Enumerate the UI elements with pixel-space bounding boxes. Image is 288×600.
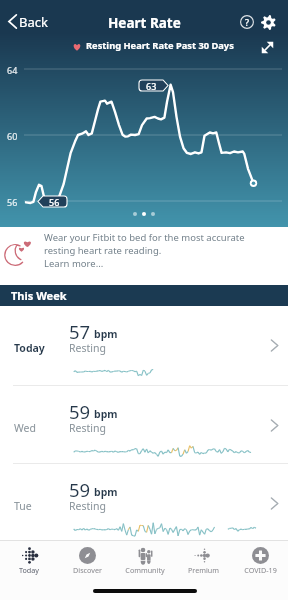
button[interactable]: Back bbox=[0, 8, 56, 35]
staticText: Wear your Fitbit to bed for the most acc… bbox=[44, 231, 245, 244]
staticText: 63 bbox=[146, 80, 157, 92]
staticText: 59 bbox=[69, 477, 91, 502]
staticText: Heart Rate bbox=[108, 14, 181, 32]
staticText: COVID-19 bbox=[244, 565, 277, 575]
staticText: resting heart rate reading. bbox=[44, 244, 162, 257]
button[interactable]: Settings bbox=[257, 11, 279, 33]
staticText: bpm bbox=[94, 327, 118, 341]
button[interactable]: Today bbox=[0, 541, 58, 579]
button[interactable]: Today bbox=[0, 306, 288, 386]
staticText: Premium bbox=[188, 565, 219, 575]
button[interactable]: Community bbox=[116, 541, 174, 579]
staticText: bpm bbox=[94, 485, 118, 499]
staticText: This Week bbox=[11, 288, 67, 303]
button[interactable]: Tue bbox=[0, 464, 288, 542]
staticText: 59 bbox=[69, 399, 91, 424]
staticText: bpm bbox=[94, 407, 118, 421]
button[interactable]: Wear your Fitbit to bed for the most acc… bbox=[0, 227, 288, 285]
staticText: Today bbox=[19, 565, 39, 575]
staticText: ? bbox=[245, 16, 250, 28]
staticText: 60 bbox=[7, 130, 18, 142]
staticText: Back bbox=[19, 13, 48, 31]
staticText: Today bbox=[14, 341, 45, 355]
button[interactable]: Expand chart bbox=[254, 34, 280, 60]
staticText: 56 bbox=[49, 196, 60, 208]
staticText: 56 bbox=[7, 196, 18, 208]
staticText: Wed bbox=[14, 421, 36, 435]
button[interactable]: Help bbox=[236, 11, 258, 33]
staticText: Resting bbox=[69, 341, 106, 355]
staticText: Resting Heart Rate Past 30 Days bbox=[86, 39, 234, 52]
staticText: Resting bbox=[69, 421, 106, 435]
staticText: Community bbox=[125, 565, 165, 575]
staticText: Tue bbox=[14, 499, 32, 513]
button[interactable]: Discover bbox=[58, 541, 116, 579]
button[interactable]: COVID-19 bbox=[232, 541, 288, 579]
staticText: 64 bbox=[7, 64, 18, 76]
staticText: Learn more... bbox=[44, 257, 104, 270]
staticText: Discover bbox=[73, 565, 102, 575]
staticText: Resting bbox=[69, 499, 106, 513]
button[interactable]: Premium bbox=[174, 541, 232, 579]
button[interactable]: Wed bbox=[0, 386, 288, 464]
staticText: 57 bbox=[69, 319, 91, 344]
